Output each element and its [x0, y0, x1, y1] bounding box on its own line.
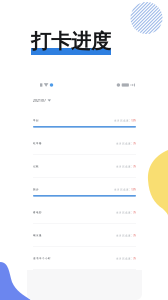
staticText: 0%	[132, 211, 136, 214]
staticText: 2021/07	[33, 98, 46, 103]
button[interactable]: 早起	[27, 109, 142, 132]
staticText: 喝水量	[33, 234, 42, 237]
staticText: 跑步	[33, 188, 39, 191]
staticText: 看电影	[33, 211, 42, 214]
staticText: 100%	[130, 188, 136, 191]
button[interactable]: 吃早餐	[27, 132, 142, 155]
staticText: 0%	[132, 234, 136, 237]
staticText: 本月完成度:	[114, 119, 130, 122]
staticText: 吃早餐	[33, 142, 42, 145]
button[interactable]: 读书半个小时	[27, 247, 142, 270]
button[interactable]: 看电影	[27, 201, 142, 224]
staticText: 本月完成度:	[116, 142, 132, 145]
staticText: 读书半个小时	[33, 257, 51, 260]
button[interactable]: 喝水量	[27, 224, 142, 247]
staticText: 0%	[132, 142, 136, 145]
staticText: 早起	[33, 119, 39, 122]
staticText: 0%	[132, 257, 136, 260]
staticText: 记账	[33, 165, 39, 168]
staticText: 本月完成度:	[116, 165, 132, 168]
staticText: 100%	[130, 119, 136, 122]
button[interactable]: 跑步	[27, 178, 142, 201]
button[interactable]: 记账	[27, 155, 142, 178]
staticText: 打卡进度	[31, 29, 111, 54]
staticText: 本月完成度:	[116, 211, 132, 214]
staticText: 本月完成度:	[116, 257, 132, 260]
staticText: 本月完成度:	[114, 188, 130, 191]
staticText: 本月完成度:	[116, 234, 132, 237]
button[interactable]: 2021/07	[33, 92, 136, 109]
staticText: 0%	[132, 165, 136, 168]
